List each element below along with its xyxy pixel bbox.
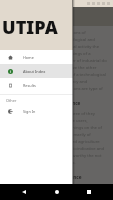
staticText: gual three of they provide users, someth… bbox=[60, 111, 107, 166]
button[interactable]: About Index bbox=[0, 64, 73, 78]
button[interactable]: Sign In bbox=[0, 104, 73, 118]
button[interactable]: Home bbox=[49, 184, 65, 200]
staticText: Guidance bbox=[60, 174, 82, 180]
staticText: Evidence bbox=[60, 100, 81, 106]
button[interactable]: Back bbox=[16, 184, 32, 200]
button[interactable]: Results bbox=[0, 78, 73, 92]
staticText: About Index bbox=[23, 69, 46, 74]
staticText: conditions of technological and practica… bbox=[60, 30, 107, 99]
button[interactable]: Recents bbox=[81, 184, 97, 200]
staticText: Other bbox=[6, 98, 17, 103]
staticText: Results bbox=[23, 83, 36, 88]
staticText: Sign In bbox=[23, 109, 36, 114]
button[interactable]: Home bbox=[0, 50, 73, 64]
staticText: Home bbox=[23, 55, 34, 60]
staticText: UTIPA bbox=[2, 15, 58, 40]
